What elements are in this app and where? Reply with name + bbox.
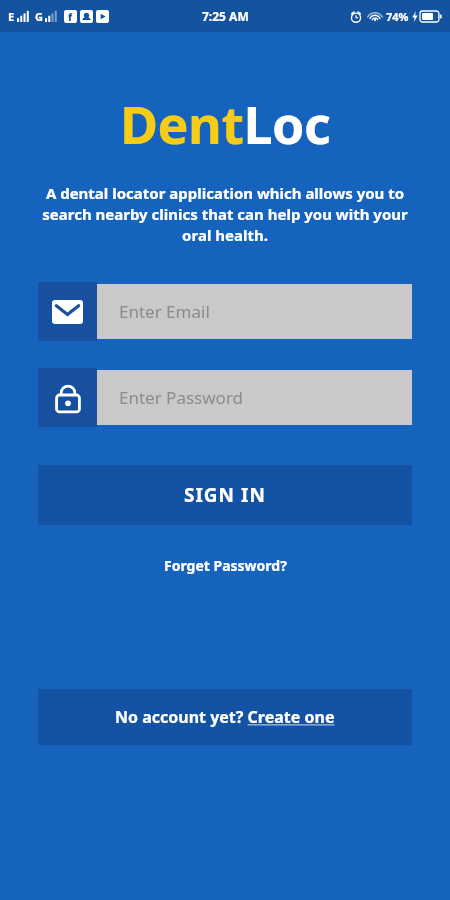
button[interactable]: Forget Password?	[154, 552, 297, 579]
button[interactable]: Email	[38, 282, 412, 341]
staticText: 74%	[386, 9, 409, 24]
other: Password	[38, 368, 97, 427]
button[interactable]: Password	[38, 368, 412, 427]
staticText: Enter Password	[119, 386, 244, 409]
staticText: E	[8, 9, 15, 24]
staticText: No account yet? Create one	[115, 706, 335, 728]
staticText: f	[68, 10, 73, 23]
staticText: G	[35, 9, 43, 24]
button[interactable]: No account yet? Create one	[38, 689, 412, 745]
other: Email	[38, 282, 97, 341]
staticText: Forget Password?	[164, 556, 287, 575]
staticText: 7:25 AM	[202, 8, 249, 24]
button[interactable]: SIGN IN	[38, 465, 412, 525]
staticText: A dental locator application which allow…	[30, 183, 420, 246]
staticText: SIGN IN	[184, 482, 266, 508]
staticText: DentLoc	[120, 88, 331, 159]
staticText: Enter Email	[119, 300, 210, 323]
